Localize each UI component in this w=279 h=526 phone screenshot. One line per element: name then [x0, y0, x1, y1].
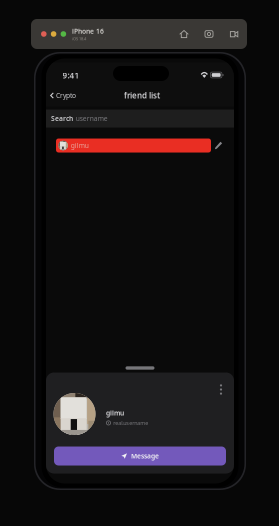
button[interactable]: Screenshot	[202, 27, 215, 40]
staticText: gilmu	[71, 141, 89, 150]
staticText: gilmu	[106, 408, 124, 417]
button[interactable]: Search	[46, 109, 234, 127]
button[interactable]: Message	[54, 446, 226, 465]
staticText: Search	[51, 114, 73, 123]
button[interactable]: Record screen	[227, 27, 240, 40]
staticText: iPhone 16	[72, 27, 104, 36]
staticText: iOS 18.4	[72, 36, 86, 41]
staticText: Crypto	[56, 91, 76, 100]
staticText: real.username	[113, 419, 148, 426]
button[interactable]: Home	[177, 27, 190, 40]
button[interactable]: Edit	[212, 139, 225, 152]
button[interactable]: gilmu	[56, 138, 211, 152]
staticText: 9:41	[62, 70, 79, 81]
button[interactable]: Crypto	[50, 88, 86, 103]
button[interactable]: More options	[214, 381, 227, 398]
staticText: username	[76, 114, 108, 123]
staticText: friend list	[124, 90, 160, 101]
staticText: Message	[131, 452, 159, 460]
